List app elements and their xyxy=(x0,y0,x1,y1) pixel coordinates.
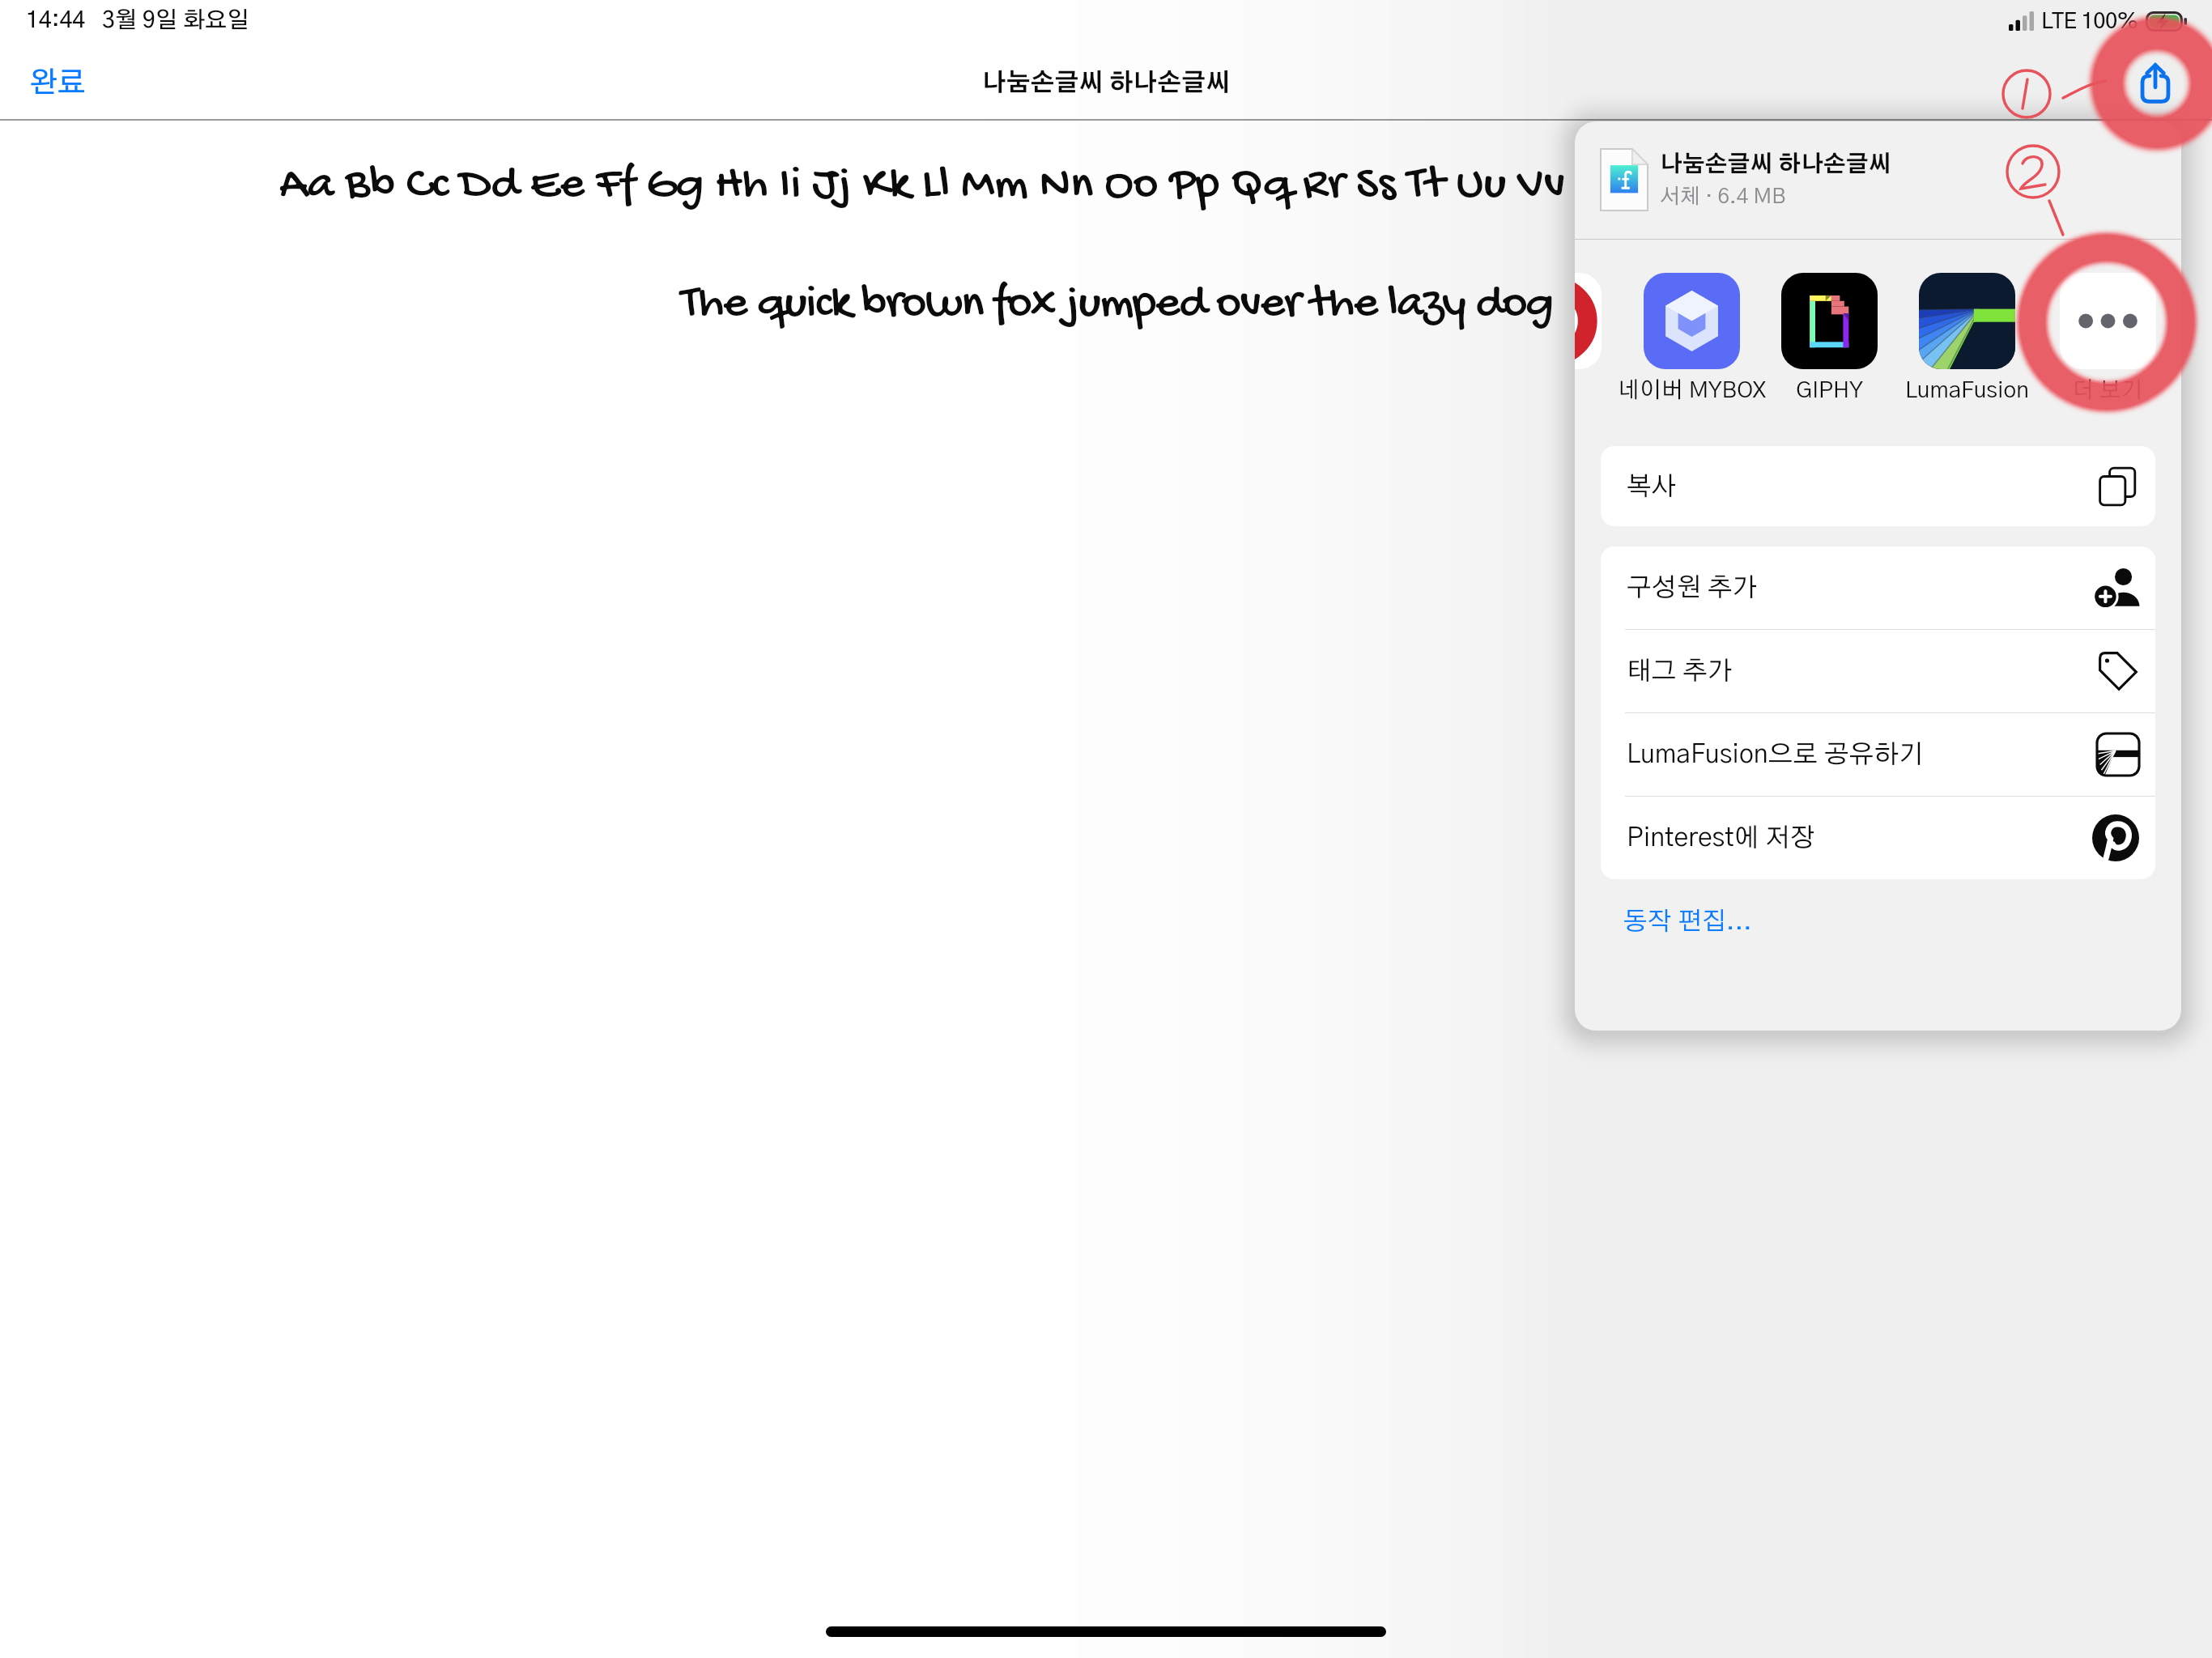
button[interactable]: 구성원 추가 xyxy=(1601,546,2155,629)
staticText: 네이버 MYBOX xyxy=(1618,380,1766,402)
button[interactable]: Pinterest에 저장 xyxy=(1601,797,2155,879)
staticText: Aa Bb Cc Dd Ee Ff Gg Hh Ii Jj Kk Ll Mm N… xyxy=(279,159,1716,215)
staticText: 나눔손글씨 하나손글씨 xyxy=(982,71,1231,96)
button[interactable]: LumaFusion xyxy=(1845,273,2088,402)
button[interactable]: 네이버 MYBOX xyxy=(1575,273,1813,402)
button[interactable]: LumaFusion으로 공유하기 xyxy=(1601,713,2155,796)
staticText: Pinterest에 저장 xyxy=(1627,825,1815,851)
staticText: LTE 100% xyxy=(2041,11,2138,32)
button[interactable]: 복사 xyxy=(1601,446,2155,526)
staticText: 태그 추가 xyxy=(1627,658,1733,684)
staticText: 나눔손글씨 하나손글씨 xyxy=(1660,154,1891,176)
button[interactable]: 더 보기 xyxy=(1986,273,2181,402)
button[interactable]: Share xyxy=(2129,57,2181,109)
staticText: LumaFusion xyxy=(1905,380,2029,402)
staticText: 완료 xyxy=(29,69,87,98)
staticText: GIPHY xyxy=(1796,380,1863,402)
staticText: 복사 xyxy=(1627,474,1677,500)
button[interactable]: 완료 xyxy=(21,61,95,106)
staticText: 더 보기 xyxy=(2072,380,2143,402)
staticText: The quick brown fox jumped over the lazy… xyxy=(681,278,1553,334)
button[interactable]: 동작 편집... xyxy=(1617,903,1759,941)
button[interactable]: GIPHY xyxy=(1708,273,1950,402)
staticText: 3월 9일 화요일 xyxy=(102,10,249,32)
staticText: LumaFusion으로 공유하기 xyxy=(1627,742,1924,767)
staticText: 구성원 추가 xyxy=(1627,575,1758,601)
button[interactable]: 태그 추가 xyxy=(1601,630,2155,712)
staticText: 동작 편집... xyxy=(1623,909,1752,934)
staticText: 14:44 xyxy=(26,10,86,32)
button[interactable]: st xyxy=(1575,273,1674,402)
staticText: 서체 · 6.4 MB xyxy=(1660,186,1786,207)
